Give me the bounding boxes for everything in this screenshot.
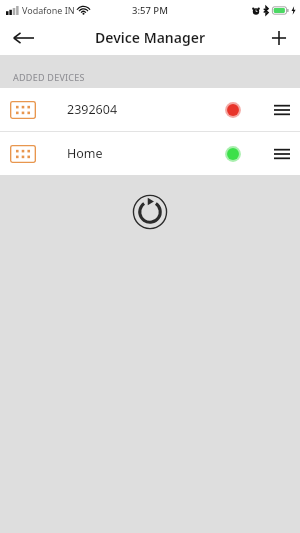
staticText: Device Manager [95, 28, 205, 47]
staticText: Home [67, 145, 103, 162]
button[interactable]: Refresh [132, 194, 168, 230]
button[interactable]: Add device [258, 20, 300, 55]
staticText: 2392604 [67, 101, 118, 118]
staticText: ADDED DEVICES [13, 71, 85, 83]
button[interactable]: Back [0, 20, 46, 55]
staticText: 3:57 PM [132, 4, 168, 17]
button[interactable]: Reorder 2392604 [264, 88, 300, 131]
button[interactable]: Home [0, 132, 300, 175]
button[interactable]: 2392604 [0, 88, 300, 131]
staticText: Vodafone IN [22, 4, 75, 16]
button[interactable]: Reorder Home [264, 132, 300, 175]
